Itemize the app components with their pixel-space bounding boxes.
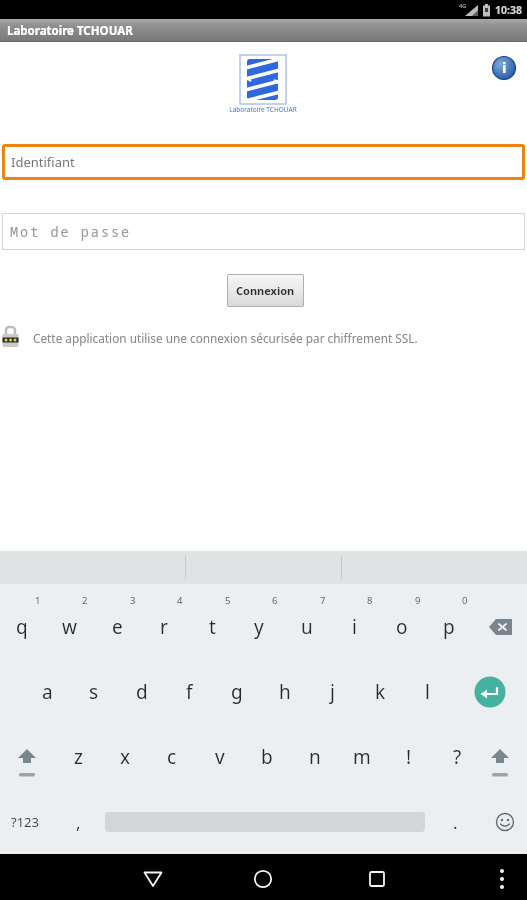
button[interactable]: ? [435,741,479,773]
button[interactable] [361,863,393,895]
staticText: h [279,679,291,705]
button[interactable]: w [47,611,91,643]
staticText: ? [453,744,462,770]
staticText: 0 [462,594,468,607]
staticText: 4 [177,594,183,607]
button[interactable]: x [103,741,147,773]
staticText: a [42,679,53,705]
staticText: y [254,614,264,640]
staticText: Laboratoire TCHOUAR [229,105,297,114]
staticText: z [74,744,83,770]
button[interactable]: j [310,676,354,708]
button[interactable]: i [332,611,376,643]
button[interactable]: Mot de passe [2,213,525,250]
staticText: Connexion [236,283,295,298]
staticText: i [352,614,357,640]
button[interactable]: l [405,676,449,708]
staticText: Identifiant [11,153,75,171]
staticText: 8 [367,594,373,607]
staticText: b [261,744,273,770]
staticText: 9 [415,594,421,607]
staticText: e [112,614,123,640]
staticText: s [89,679,99,705]
staticText: . [453,811,458,834]
button[interactable]: ! [387,741,431,773]
staticText: ! [406,744,412,770]
button[interactable]: ?123 [3,806,47,838]
button[interactable]: r [142,611,186,643]
staticText: 4G [459,2,467,9]
staticText: x [120,744,131,770]
staticText: 10:38 [495,3,522,17]
button[interactable]: f [167,676,211,708]
staticText: t [209,614,216,640]
button[interactable]: v [198,741,242,773]
button[interactable]: k [358,676,402,708]
staticText: Cette application utilise une connexion … [33,330,418,346]
staticText: m [353,744,371,770]
staticText: u [301,614,313,640]
staticText: p [443,614,455,640]
staticText: ?123 [11,813,39,831]
button[interactable]: o [380,611,424,643]
staticText: o [396,614,408,640]
staticText: , [76,811,81,834]
staticText: 7 [320,594,326,607]
button[interactable]: Identifiant [2,144,525,180]
button[interactable]: Connexion [227,274,304,307]
staticText: f [186,679,193,705]
button[interactable]: u [285,611,329,643]
staticText: 5 [225,594,231,607]
staticText: d [136,679,148,705]
button[interactable]: e [95,611,139,643]
staticText: k [375,679,386,705]
button[interactable] [247,863,279,895]
staticText: Laboratoire TCHOUAR [7,23,133,39]
button[interactable]: d [120,676,164,708]
button[interactable]: i [492,56,516,80]
staticText: 3 [130,594,136,607]
staticText: v [215,744,225,770]
staticText: j [330,679,335,705]
button[interactable]: a [25,676,69,708]
button[interactable]: s [72,676,116,708]
staticText: n [309,744,321,770]
button[interactable]: h [263,676,307,708]
staticText: i [502,57,507,77]
staticText: g [231,679,243,705]
staticText: q [16,614,28,640]
button[interactable]: g [215,676,259,708]
staticText: w [62,614,77,640]
button[interactable]: y [237,611,281,643]
button[interactable]: , [56,806,100,838]
staticText: c [167,744,177,770]
staticText: Mot de passe [10,223,132,241]
staticText: r [160,614,168,640]
staticText: 6 [272,594,278,607]
button[interactable]: z [56,741,100,773]
button[interactable]: n [293,741,337,773]
button[interactable]: b [245,741,289,773]
button[interactable] [240,55,286,104]
button[interactable]: p [427,611,471,643]
button[interactable]: q [0,611,44,643]
button[interactable]: m [340,741,384,773]
staticText: l [425,679,430,705]
button[interactable] [137,863,169,895]
staticText: 1 [35,594,41,607]
staticText: 2 [82,594,88,607]
button[interactable]: t [190,611,234,643]
button[interactable]: . [433,806,477,838]
button[interactable]: c [150,741,194,773]
